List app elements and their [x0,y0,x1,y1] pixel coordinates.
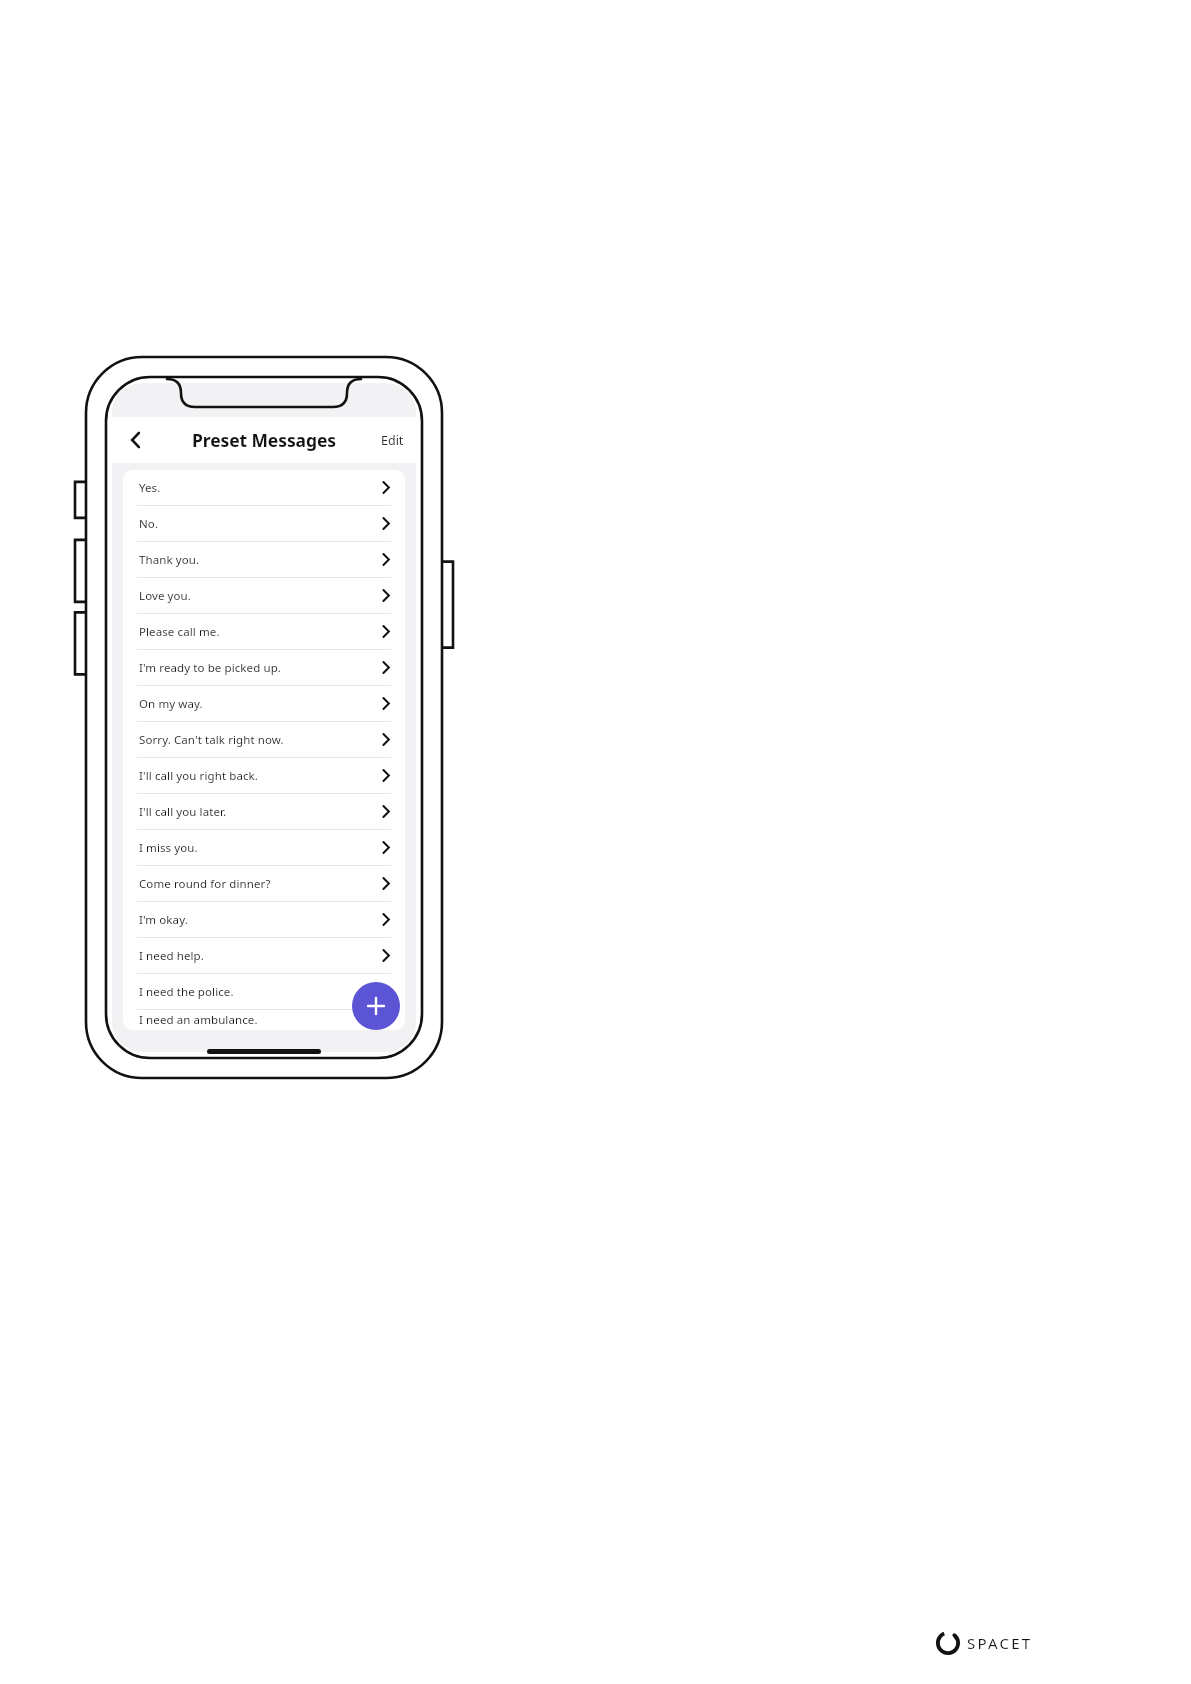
staticText: I need the police. [139,984,382,1000]
button[interactable]: Sorry. Can't talk right now. [123,722,405,757]
button[interactable]: Add preset message [352,982,400,1030]
button[interactable]: Come round for dinner? [123,866,405,901]
staticText: No. [139,516,382,532]
button[interactable]: Thank you. [123,542,405,577]
button[interactable]: Edit [369,424,416,457]
staticText: I'll call you later. [139,804,382,820]
staticText: I need help. [139,948,382,964]
button[interactable]: Please call me. [123,614,405,649]
staticText: On my way. [139,696,382,712]
staticText: I'll call you right back. [139,768,382,784]
staticText: Edit [381,432,404,449]
staticText: Sorry. Can't talk right now. [139,732,382,748]
button[interactable]: No. [123,506,405,541]
staticText: Love you. [139,588,382,604]
button[interactable]: I need an ambulance. [123,1010,405,1030]
button[interactable]: I need help. [123,938,405,973]
button[interactable]: I'm okay. [123,902,405,937]
button[interactable]: I miss you. [123,830,405,865]
button[interactable]: I'm ready to be picked up. [123,650,405,685]
button[interactable]: Love you. [123,578,405,613]
staticText: Yes. [139,480,382,496]
staticText: I'm ready to be picked up. [139,660,382,676]
staticText: I need an ambulance. [139,1012,382,1028]
staticText: I'm okay. [139,912,382,928]
staticText: SPACETALK [967,1633,1040,1653]
button[interactable]: I'll call you right back. [123,758,405,793]
button[interactable]: I'll call you later. [123,794,405,829]
staticText: Come round for dinner? [139,876,382,892]
button[interactable]: Yes. [123,470,405,505]
staticText: Please call me. [139,624,382,640]
button[interactable]: Back [118,422,154,458]
button[interactable]: On my way. [123,686,405,721]
staticText: I miss you. [139,840,382,856]
button[interactable]: I need the police. [123,974,405,1009]
staticText: Preset Messages [192,428,336,452]
staticText: Thank you. [139,552,382,568]
